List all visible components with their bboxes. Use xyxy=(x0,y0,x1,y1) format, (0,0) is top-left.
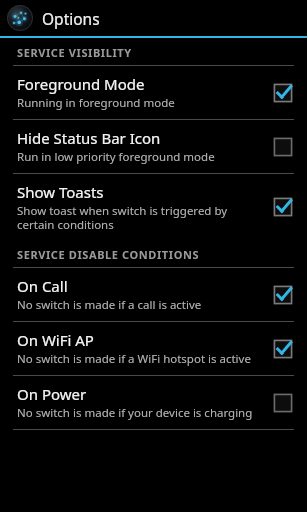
staticText: Hide Status Bar Icon xyxy=(17,128,161,148)
staticText: On Power xyxy=(17,384,87,404)
button[interactable]: Show Toasts xyxy=(0,174,307,240)
button[interactable]: Foreground Mode xyxy=(0,66,307,119)
button[interactable]: Hide Status Bar Icon xyxy=(0,120,307,173)
staticText: On WiFi AP xyxy=(17,330,94,350)
button[interactable]: On Power xyxy=(0,376,307,429)
staticText: Running in foreground mode xyxy=(17,95,175,111)
staticText: SERVICE VISIBILITY xyxy=(17,45,132,60)
staticText: On Call xyxy=(17,276,68,296)
staticText: No switch is made if a WiFi hotspot is a… xyxy=(17,351,251,367)
staticText: Options xyxy=(42,8,100,29)
staticText: SERVICE DISABLE CONDITIONS xyxy=(17,247,200,262)
staticText: Run in low priority foreground mode xyxy=(17,149,215,165)
button[interactable]: On Call xyxy=(0,268,307,321)
staticText: Show Toasts xyxy=(17,182,104,202)
button[interactable]: On WiFi AP xyxy=(0,322,307,375)
staticText: No switch is made if your device is char… xyxy=(17,405,253,421)
staticText: Foreground Mode xyxy=(17,74,145,94)
staticText: Show toast when switch is triggered by c… xyxy=(17,203,264,232)
button[interactable]: Options, up xyxy=(0,0,307,36)
staticText: No switch is made if a call is active xyxy=(17,297,202,313)
